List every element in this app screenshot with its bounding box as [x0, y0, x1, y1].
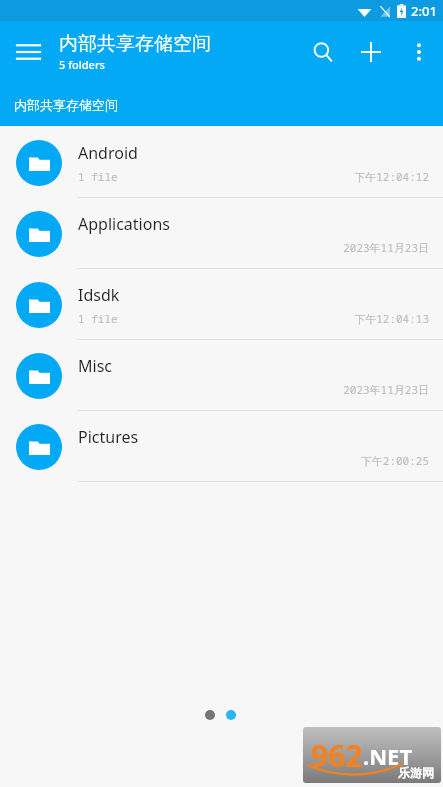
staticText: 962: [311, 735, 363, 776]
staticText: 2023年11月23日: [343, 240, 429, 255]
button[interactable]: Open navigation drawer: [0, 24, 56, 80]
staticText: Applications: [78, 213, 170, 235]
button[interactable]: Add: [347, 28, 395, 76]
button[interactable]: Search: [299, 28, 347, 76]
staticText: Android: [78, 142, 138, 164]
staticText: 2023年11月23日: [343, 382, 429, 397]
staticText: 下午12:04:13: [354, 311, 429, 326]
staticText: 下午12:04:12: [354, 169, 429, 184]
button[interactable]: Pictures: [0, 411, 443, 482]
button[interactable]: Idsdk: [0, 269, 443, 340]
button[interactable]: 内部共享存储空间: [14, 97, 118, 113]
staticText: 2:01: [411, 2, 437, 20]
staticText: 乐游网: [398, 765, 434, 780]
staticText: 1 file: [78, 311, 118, 326]
staticText: Idsdk: [78, 284, 120, 306]
staticText: 下午2:00:25: [360, 453, 429, 468]
button[interactable]: Misc: [0, 340, 443, 411]
button[interactable]: Applications: [0, 198, 443, 269]
staticText: 内部共享存储空间: [59, 32, 211, 56]
staticText: Pictures: [78, 426, 139, 448]
staticText: 5 folders: [59, 57, 105, 72]
staticText: 1 file: [78, 169, 118, 184]
button[interactable]: Android: [0, 127, 443, 198]
staticText: 内部共享存储空间: [14, 97, 118, 113]
button[interactable]: More options: [395, 28, 443, 76]
staticText: .NET: [363, 741, 413, 771]
staticText: Misc: [78, 355, 112, 377]
